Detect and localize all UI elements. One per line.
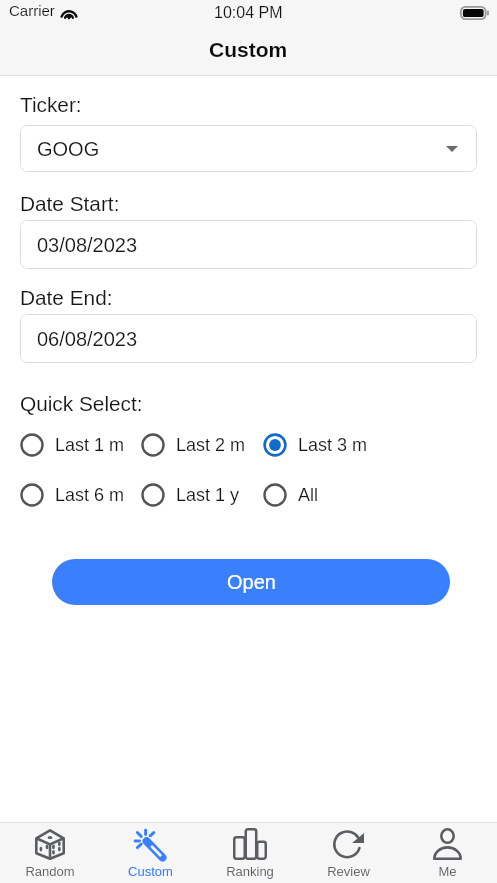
button[interactable]: Review: [299, 823, 398, 879]
staticText: 03/08/2023: [37, 234, 138, 256]
staticText: Last 1 y: [176, 485, 240, 505]
staticText: All: [298, 485, 319, 505]
staticText: Me: [438, 864, 457, 879]
button[interactable]: Custom: [100, 823, 200, 879]
staticText: Ranking: [226, 864, 274, 879]
staticText: Ticker:: [20, 93, 82, 116]
staticText: Carrier: [9, 2, 55, 19]
staticText: Custom: [128, 864, 173, 879]
button[interactable]: Last 1 m: [20, 433, 125, 457]
staticText: Quick Select:: [20, 392, 143, 415]
staticText: Open: [227, 571, 276, 593]
button[interactable]: Last 2 m: [141, 433, 246, 457]
button[interactable]: Me: [398, 823, 497, 879]
staticText: 06/08/2023: [37, 328, 138, 350]
button[interactable]: Open: [52, 559, 450, 605]
button[interactable]: Last 1 y: [141, 483, 240, 507]
staticText: 10:04 PM: [214, 4, 283, 22]
staticText: Date Start:: [20, 192, 120, 215]
staticText: GOOG: [37, 138, 100, 160]
button[interactable]: Random: [0, 823, 100, 879]
button[interactable]: Last 6 m: [20, 483, 125, 507]
staticText: Last 2 m: [176, 435, 246, 455]
button[interactable]: 03/08/2023: [20, 220, 477, 269]
staticText: Review: [327, 864, 370, 879]
staticText: Custom: [209, 38, 288, 61]
button[interactable]: Last 3 m: [263, 433, 368, 457]
staticText: Random: [25, 864, 75, 879]
button[interactable]: 06/08/2023: [20, 314, 477, 363]
staticText: Last 3 m: [298, 435, 368, 455]
staticText: Date End:: [20, 286, 113, 309]
button[interactable]: All: [263, 483, 319, 507]
button[interactable]: Ranking: [200, 823, 299, 879]
staticText: Last 1 m: [55, 435, 125, 455]
staticText: Last 6 m: [55, 485, 125, 505]
button[interactable]: GOOG: [20, 125, 477, 172]
